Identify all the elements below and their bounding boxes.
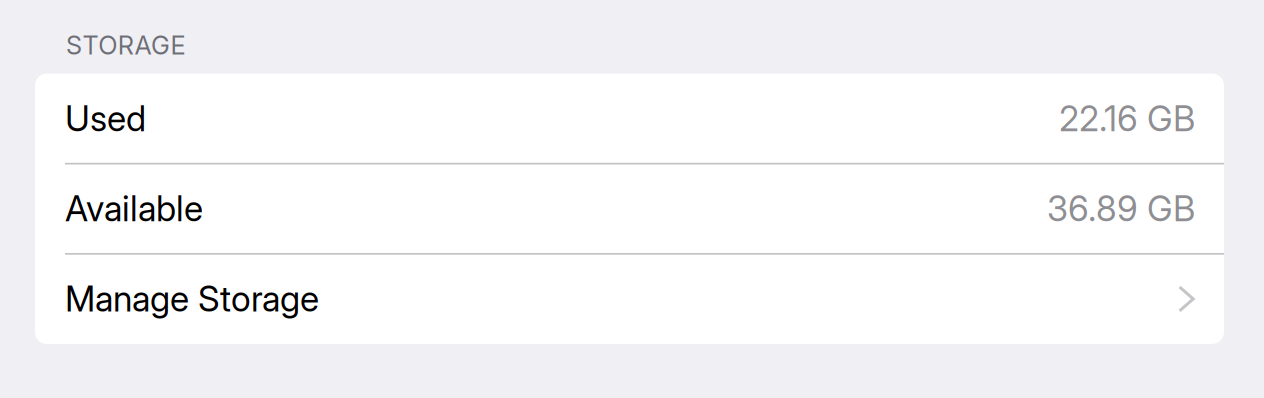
staticText: Manage Storage — [65, 278, 319, 320]
staticText: 36.89 GB — [1047, 188, 1195, 230]
button[interactable]: Available — [35, 164, 1224, 254]
staticText: STORAGE — [66, 30, 186, 61]
staticText: Available — [65, 188, 203, 230]
button[interactable]: Manage Storage — [35, 254, 1224, 344]
button[interactable]: Used — [35, 73, 1224, 164]
staticText: 22.16 GB — [1059, 98, 1195, 139]
staticText: Used — [65, 98, 146, 139]
